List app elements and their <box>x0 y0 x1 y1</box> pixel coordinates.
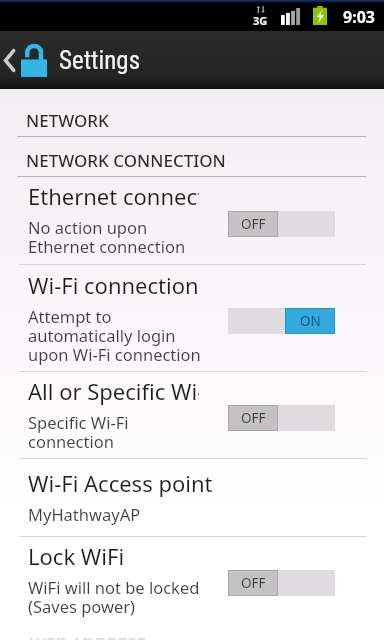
staticText: WiFi will not be locked (Saves power) <box>28 576 200 618</box>
staticText: WEB ADDRESS <box>30 632 146 640</box>
staticText: Lock WiFi <box>28 541 125 571</box>
staticText: NETWORK CONNECTION <box>26 149 226 172</box>
staticText: Wi-Fi Access point <box>28 468 213 498</box>
staticText: 3G <box>253 13 268 28</box>
staticText: MyHathwayAP <box>28 503 141 525</box>
button[interactable]: ON <box>228 308 335 334</box>
staticText: Wi-Fi connection <box>28 270 199 300</box>
staticText: OFF <box>241 215 266 233</box>
staticText: OFF <box>241 409 266 427</box>
staticText: Attempt to automatically login upon Wi-F… <box>28 305 201 366</box>
button[interactable]: OFF <box>228 405 335 431</box>
staticText: Specific Wi-Fi connection <box>28 411 129 453</box>
button[interactable]: OFF <box>228 211 335 237</box>
staticText: Settings <box>59 46 141 75</box>
button[interactable]: Ethernet connection <box>0 177 384 264</box>
button[interactable]: All or Specific Wi-Fi <box>0 372 384 458</box>
staticText: OFF <box>241 574 266 592</box>
staticText: ON <box>300 312 321 330</box>
button[interactable]: Wi-Fi Access point <box>0 459 384 536</box>
staticText: NETWORK <box>26 109 109 132</box>
button[interactable]: Wi-Fi connection <box>0 265 384 371</box>
staticText: 9:03 <box>343 6 375 28</box>
staticText: No action upon Ethernet connection <box>28 216 186 258</box>
button[interactable]: Lock WiFi <box>0 537 384 623</box>
staticText: Ethernet connection <box>28 181 199 211</box>
staticText: All or Specific Wi-Fi <box>28 376 199 406</box>
button[interactable]: OFF <box>228 570 335 596</box>
button[interactable]: Navigate up <box>0 43 50 78</box>
